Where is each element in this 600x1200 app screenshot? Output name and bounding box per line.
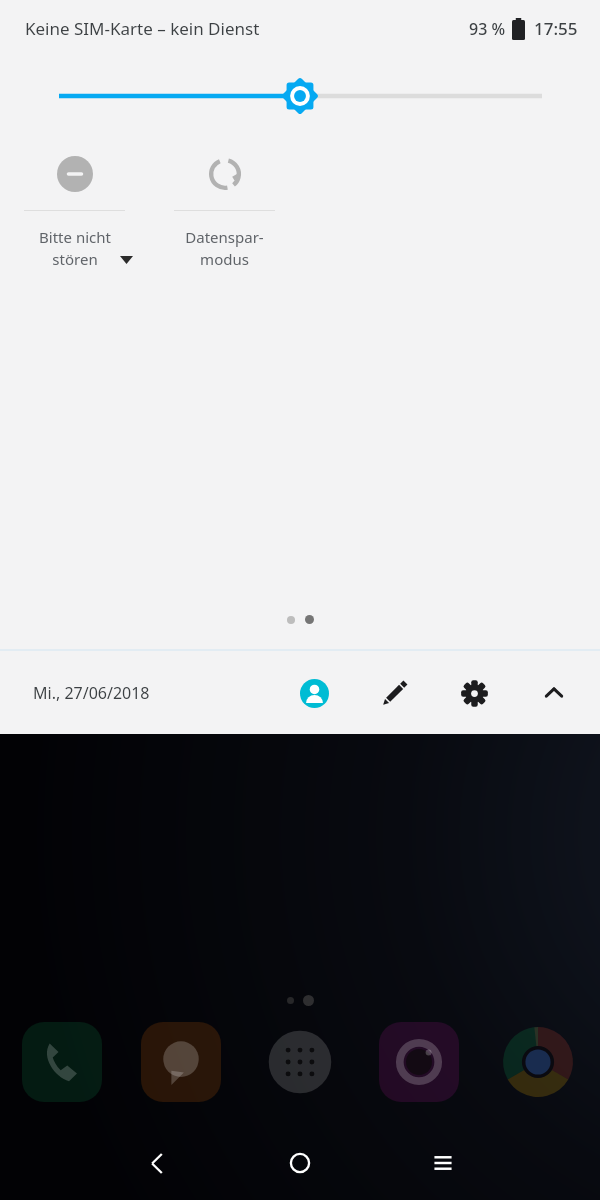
staticText: Datenspar- modus: [185, 227, 264, 270]
staticText: 93 %: [469, 18, 506, 40]
staticText: Keine SIM-Karte – kein Dienst: [25, 17, 260, 40]
button[interactable]: Kamera: [375, 1018, 463, 1106]
button[interactable]: Startbildschirm: [273, 1136, 327, 1190]
staticText: 17:55: [534, 17, 578, 40]
button[interactable]: Datenspar- modus: [162, 138, 287, 270]
button[interactable]: Einklappen: [534, 673, 574, 713]
button[interactable]: Apps: [256, 1018, 344, 1106]
button[interactable]: Bitte nicht stören Optionen: [112, 246, 140, 274]
button[interactable]: Übersicht: [416, 1136, 470, 1190]
button[interactable]: Zurück: [130, 1136, 184, 1190]
button[interactable]: Nachrichten: [137, 1018, 225, 1106]
staticText: Bitte nicht stören: [39, 227, 111, 270]
button[interactable]: Bearbeiten: [374, 673, 414, 713]
button[interactable]: Helligkeit: [278, 74, 322, 118]
staticText: Mi., 27/06/2018: [33, 682, 150, 704]
button[interactable]: Nutzer: [294, 673, 334, 713]
button[interactable]: Telefon: [18, 1018, 106, 1106]
button[interactable]: Einstellungen: [454, 673, 494, 713]
button[interactable]: Bitte nicht stören: [12, 138, 137, 270]
button[interactable]: Chrome: [494, 1018, 582, 1106]
